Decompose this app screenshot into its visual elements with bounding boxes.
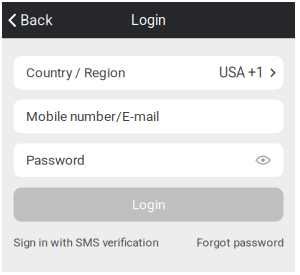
staticText: USA +1 bbox=[219, 64, 264, 81]
staticText: Mobile number/E-mail bbox=[26, 109, 159, 124]
button[interactable]: Show password bbox=[247, 148, 275, 173]
staticText: Login bbox=[131, 12, 166, 29]
staticText: Password bbox=[26, 152, 85, 168]
staticText: Forgot password bbox=[196, 236, 283, 249]
button[interactable]: Login bbox=[13, 188, 283, 222]
button[interactable]: Back bbox=[2, 2, 60, 38]
staticText: Country / Region bbox=[26, 65, 125, 81]
staticText: Back bbox=[20, 12, 52, 29]
button[interactable]: Sign in with SMS verification bbox=[13, 236, 158, 249]
button[interactable]: Forgot password bbox=[196, 236, 283, 249]
staticText: Login bbox=[132, 197, 165, 212]
staticText: Sign in with SMS verification bbox=[13, 236, 158, 249]
button[interactable]: Country / Region bbox=[13, 56, 283, 89]
